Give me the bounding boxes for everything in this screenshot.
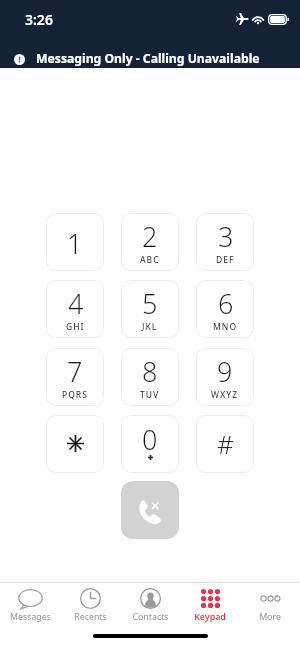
button[interactable]: 9: [196, 348, 254, 406]
button[interactable]: 7: [46, 348, 104, 406]
staticText: 8: [142, 353, 158, 390]
staticText: GHI: [66, 321, 85, 333]
staticText: 1: [67, 225, 83, 262]
button[interactable]: 4: [46, 280, 104, 338]
staticText: 5: [142, 285, 158, 322]
staticText: Contacts: [132, 611, 169, 623]
staticText: 6: [218, 285, 234, 322]
button[interactable]: 1: [46, 213, 104, 271]
staticText: #: [217, 426, 234, 461]
staticText: DEF: [216, 254, 235, 266]
button[interactable]: #: [196, 415, 254, 473]
button[interactable]: Recents: [60, 583, 120, 623]
staticText: 3: [218, 218, 234, 255]
staticText: 2: [142, 218, 158, 255]
button[interactable]: 5: [121, 280, 179, 338]
button[interactable]: Messages: [0, 583, 60, 623]
staticText: 3:26: [25, 10, 53, 29]
staticText: TUV: [140, 389, 160, 401]
button[interactable]: More: [240, 583, 300, 623]
button[interactable]: 2: [121, 213, 179, 271]
button[interactable]: Keypad: [180, 583, 240, 623]
staticText: 4: [68, 285, 84, 322]
button[interactable]: [46, 415, 104, 473]
staticText: JKL: [142, 321, 158, 333]
staticText: PQRS: [62, 389, 88, 401]
button[interactable]: 0: [121, 415, 179, 473]
staticText: More: [259, 611, 281, 623]
staticText: WXYZ: [211, 389, 239, 401]
staticText: Keypad: [194, 611, 226, 623]
staticText: Messaging Only - Calling Unavailable: [36, 50, 260, 67]
staticText: Messages: [10, 611, 51, 623]
button[interactable]: 8: [121, 348, 179, 406]
staticText: 7: [67, 353, 83, 390]
button[interactable]: Contacts: [120, 583, 180, 623]
staticText: 0: [142, 421, 158, 458]
button[interactable]: 3: [196, 213, 254, 271]
staticText: Recents: [74, 611, 107, 623]
staticText: MNO: [213, 321, 238, 333]
staticText: 9: [217, 353, 233, 390]
button[interactable]: Call unavailable: [121, 481, 179, 539]
staticText: ABC: [140, 254, 160, 266]
button[interactable]: 6: [196, 280, 254, 338]
